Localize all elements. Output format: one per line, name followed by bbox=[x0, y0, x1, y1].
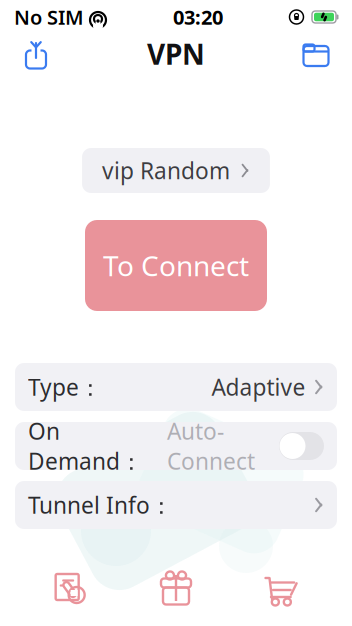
button[interactable]: To Connect bbox=[85, 220, 267, 311]
staticText: Adaptive bbox=[211, 372, 305, 402]
staticText: To Connect bbox=[103, 247, 249, 284]
staticText: Auto-Connect bbox=[167, 416, 255, 476]
button[interactable]: vip Random bbox=[82, 148, 270, 193]
button[interactable]: Share bbox=[14, 34, 58, 74]
button[interactable]: Tunnel Info： bbox=[15, 481, 337, 529]
button[interactable]: Type： bbox=[15, 363, 337, 411]
staticText: Tunnel Info： bbox=[28, 490, 173, 520]
staticText: No SIM bbox=[14, 4, 84, 30]
staticText: 03:20 bbox=[173, 4, 223, 30]
staticText: Type： bbox=[28, 372, 102, 402]
button[interactable]: Tutorial bbox=[18, 560, 123, 616]
button[interactable]: On Demand： bbox=[15, 422, 337, 470]
button[interactable]: Files bbox=[294, 34, 338, 74]
button[interactable]: Gift bbox=[123, 560, 229, 616]
staticText: VPN bbox=[147, 35, 205, 73]
staticText: On Demand： bbox=[28, 416, 143, 476]
staticText: vip Random bbox=[102, 155, 230, 185]
button[interactable]: Store bbox=[229, 560, 334, 616]
